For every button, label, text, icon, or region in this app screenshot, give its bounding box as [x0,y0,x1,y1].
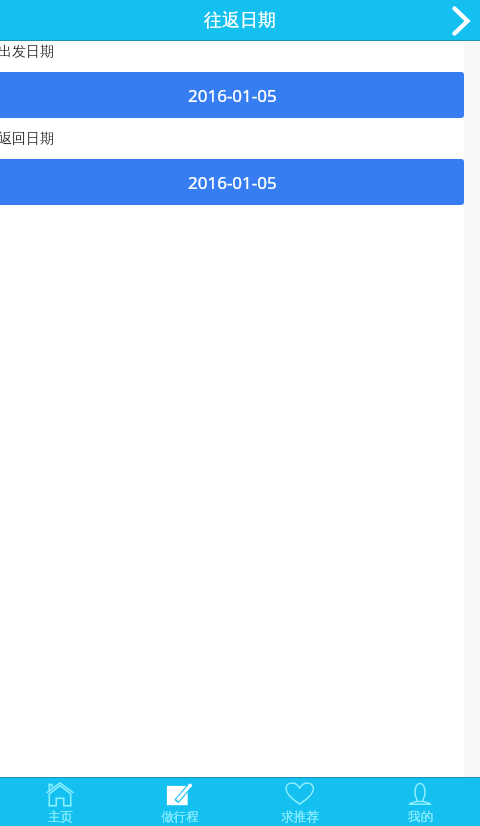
button[interactable]: 2016-01-05 [0,72,464,118]
button[interactable]: Home [0,778,120,826]
staticText: 2016-01-05 [188,84,277,107]
staticText: 返回日期 [0,130,54,148]
button[interactable]: Create itinerary [120,778,240,826]
button[interactable]: Recommendations [240,778,360,826]
staticText: 出发日期 [0,43,54,61]
staticText: 做行程 [161,809,199,825]
staticText: 主页 [48,809,73,825]
staticText: 求推荐 [281,809,319,825]
staticText: 2016-01-05 [188,171,277,194]
staticText: 我的 [408,809,433,825]
button[interactable]: Next [440,1,480,40]
button[interactable]: 2016-01-05 [0,159,464,205]
staticText: 往返日期 [204,9,276,32]
button[interactable]: Profile [360,778,480,826]
